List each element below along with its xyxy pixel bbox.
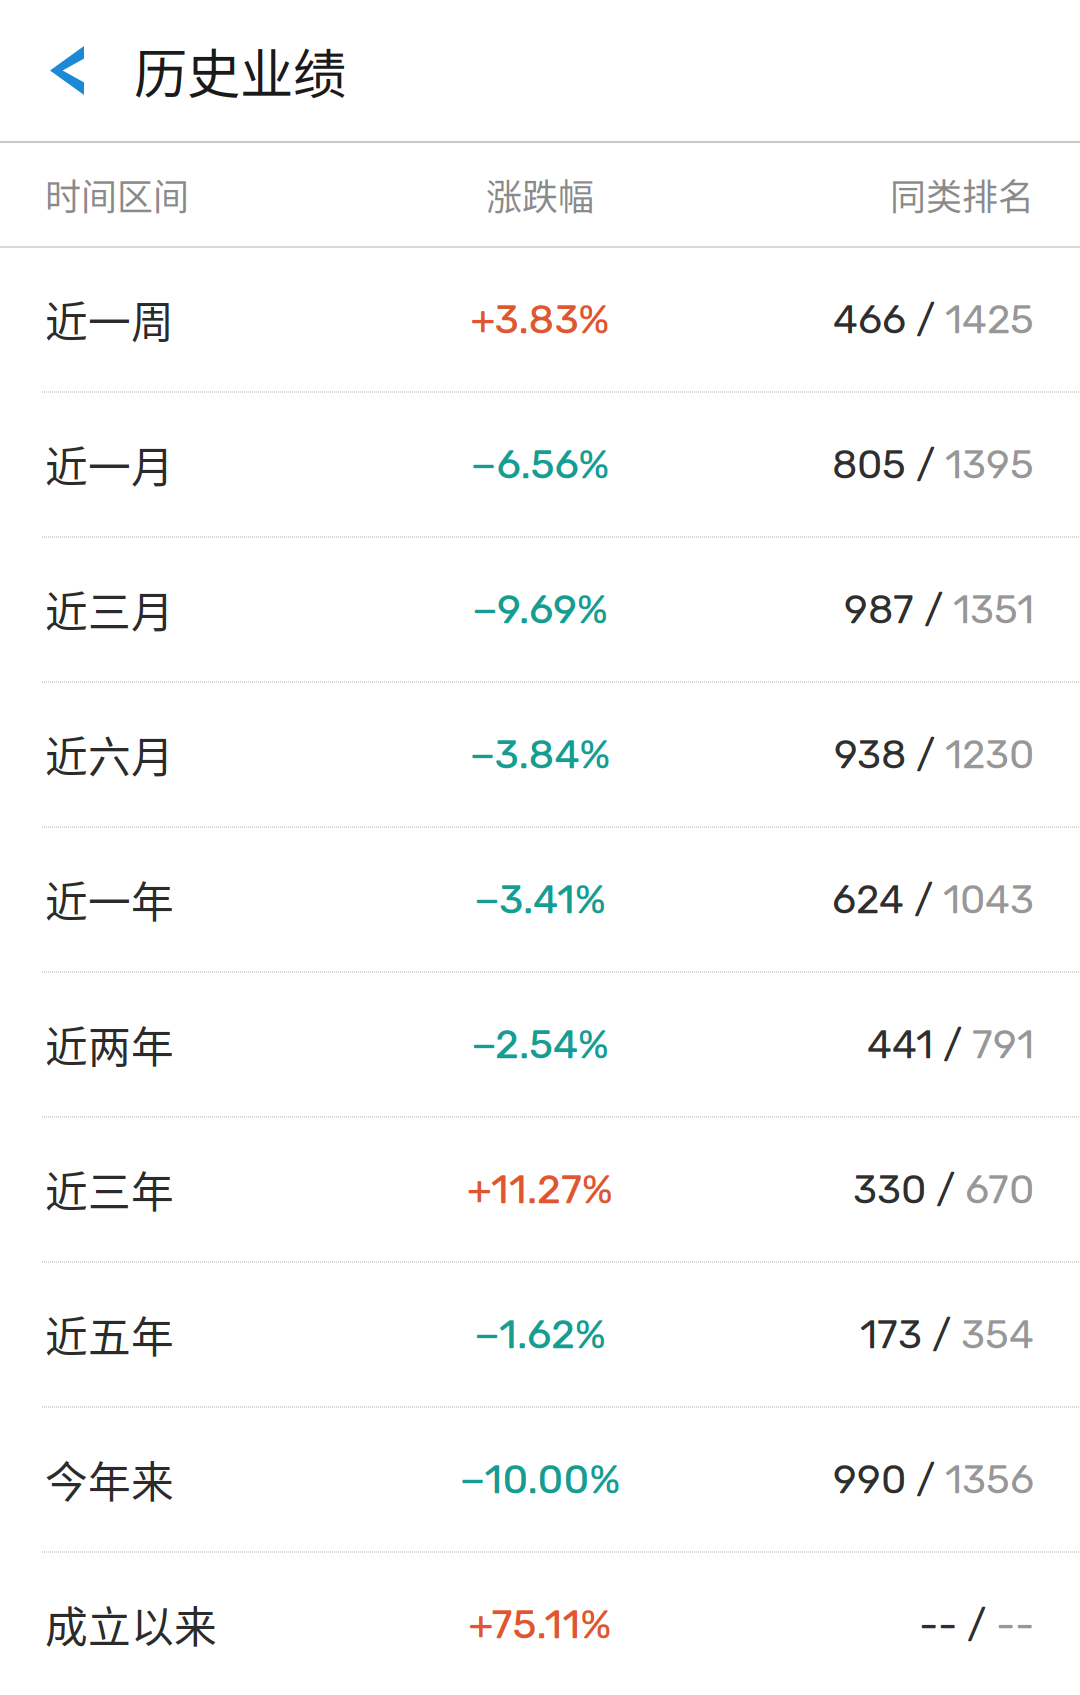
staticText: / — [933, 1021, 972, 1068]
staticText: −2.54% — [471, 1021, 609, 1068]
button[interactable]: 近一年 — [0, 828, 1080, 971]
staticText: 同类排名 — [890, 168, 1034, 220]
staticText: −1.62% — [474, 1311, 606, 1358]
staticText: / — [904, 876, 943, 923]
staticText: +11.27% — [467, 1166, 613, 1213]
staticText: 1043 — [943, 876, 1034, 923]
button[interactable]: 成立以来 — [0, 1553, 1080, 1695]
staticText: / — [926, 1166, 965, 1213]
staticText: −6.56% — [470, 441, 609, 488]
staticText: 1351 — [953, 586, 1034, 633]
staticText: 近一月 — [45, 434, 174, 495]
button[interactable]: 近两年 — [0, 973, 1080, 1116]
staticText: 173 — [860, 1311, 922, 1358]
staticText: 1395 — [945, 441, 1034, 488]
staticText: 成立以来 — [45, 1594, 217, 1655]
staticText: −9.69% — [472, 586, 608, 633]
button[interactable]: 近五年 — [0, 1263, 1080, 1406]
staticText: 987 — [844, 586, 914, 633]
staticText: 791 — [972, 1021, 1034, 1068]
staticText: 时间区间 — [45, 168, 189, 220]
staticText: 近一周 — [45, 289, 174, 350]
staticText: 441 — [867, 1021, 933, 1068]
button[interactable]: 今年来 — [0, 1408, 1080, 1551]
staticText: 近一年 — [45, 869, 174, 930]
staticText: 354 — [961, 1311, 1034, 1358]
staticText: 近三年 — [45, 1159, 174, 1220]
staticText: / — [906, 1456, 945, 1503]
staticText: 670 — [965, 1166, 1034, 1213]
staticText: 涨跌幅 — [486, 168, 594, 220]
staticText: +75.11% — [468, 1601, 611, 1648]
staticText: −3.84% — [469, 731, 610, 778]
staticText: 近两年 — [45, 1014, 174, 1075]
staticText: 1356 — [945, 1456, 1034, 1503]
button[interactable]: 近一周 — [0, 248, 1080, 391]
staticText: / — [906, 441, 945, 488]
button[interactable]: 近三月 — [0, 538, 1080, 681]
staticText: 今年来 — [45, 1449, 174, 1510]
staticText: 1230 — [945, 731, 1034, 778]
button[interactable]: Back — [0, 0, 134, 141]
staticText: 近六月 — [45, 724, 174, 785]
staticText: 330 — [853, 1166, 926, 1213]
button[interactable]: 近三年 — [0, 1118, 1080, 1261]
staticText: / — [957, 1601, 996, 1648]
staticText: / — [922, 1311, 961, 1358]
staticText: / — [906, 296, 945, 343]
staticText: 466 — [833, 296, 906, 343]
staticText: 938 — [834, 731, 906, 778]
staticText: −10.00% — [459, 1456, 620, 1503]
staticText: 805 — [832, 441, 906, 488]
staticText: -- — [996, 1601, 1034, 1648]
staticText: -- — [919, 1601, 957, 1648]
staticText: / — [906, 731, 945, 778]
staticText: 1425 — [945, 296, 1034, 343]
staticText: 624 — [832, 876, 904, 923]
staticText: +3.83% — [470, 296, 609, 343]
staticText: 历史业绩 — [134, 32, 346, 109]
staticText: 近五年 — [45, 1304, 174, 1365]
staticText: 990 — [833, 1456, 906, 1503]
staticText: / — [914, 586, 953, 633]
staticText: −3.41% — [474, 876, 606, 923]
button[interactable]: 近六月 — [0, 683, 1080, 826]
staticText: 近三月 — [45, 579, 174, 640]
button[interactable]: 近一月 — [0, 393, 1080, 536]
